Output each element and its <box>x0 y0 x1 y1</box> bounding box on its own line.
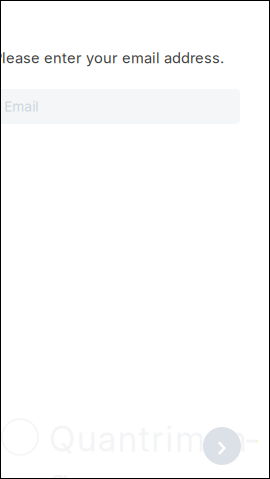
button[interactable]: Back <box>0 5 25 35</box>
button[interactable]: Next <box>203 427 241 465</box>
staticText: Quantrimang <box>49 418 268 460</box>
staticText: Please enter your email address. <box>0 49 224 67</box>
staticText: Email <box>4 98 38 115</box>
